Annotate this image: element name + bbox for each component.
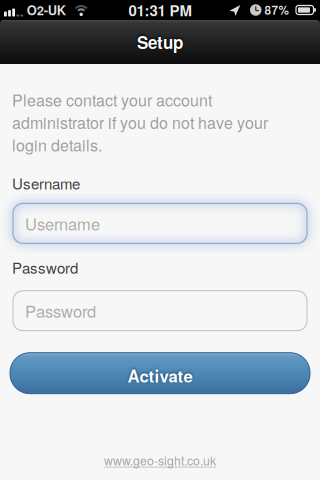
staticText: 01:31 PM: [128, 1, 191, 19]
staticText: O2-UK: [27, 2, 66, 18]
button[interactable]: Activate: [10, 353, 310, 394]
staticText: Password: [25, 301, 96, 320]
staticText: Please contact your account administrato…: [12, 90, 268, 154]
staticText: Username: [25, 214, 100, 233]
button[interactable]: Password: [13, 291, 307, 331]
staticText: Username: [12, 174, 80, 192]
staticText: www.geo-sight.co.uk: [104, 453, 216, 467]
button[interactable]: www.geo-sight.co.uk: [104, 453, 216, 467]
button[interactable]: Username: [13, 203, 307, 243]
staticText: Activate: [127, 366, 192, 386]
staticText: 87%: [264, 3, 288, 17]
staticText: Setup: [137, 32, 183, 52]
staticText: Password: [12, 258, 78, 276]
